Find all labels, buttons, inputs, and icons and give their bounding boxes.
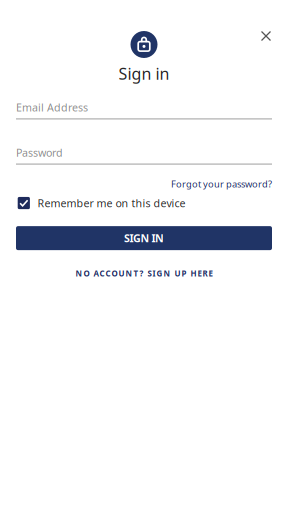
staticText: Forgot your password? [171, 178, 272, 190]
staticText: Sign in [118, 63, 169, 84]
staticText: Email Address [16, 100, 88, 114]
button[interactable]: Forgot your password? [171, 178, 272, 190]
button[interactable]: SIGN IN [16, 226, 272, 250]
button[interactable]: Remember me on this device [0, 196, 288, 210]
staticText: Remember me on this device [37, 196, 185, 210]
staticText: Password [16, 145, 63, 160]
staticText: NO ACCOUNT? SIGN UP HERE [75, 268, 212, 279]
button[interactable]: NO ACCOUNT? SIGN UP HERE [75, 268, 212, 279]
button[interactable]: Close [253, 23, 279, 49]
staticText: SIGN IN [124, 231, 164, 245]
